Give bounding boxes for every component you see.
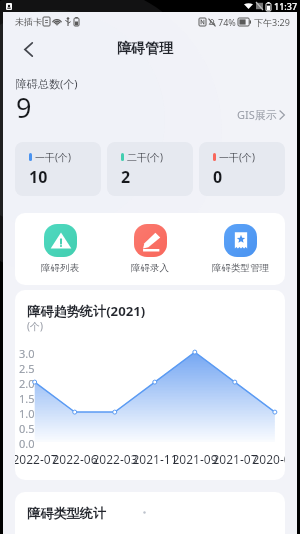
button[interactable]: GIS展示: [235, 105, 287, 124]
staticText: 0: [213, 166, 223, 188]
staticText: 障碍总数(个): [16, 76, 78, 91]
staticText: 障碍类型管理: [212, 262, 269, 274]
button[interactable]: 障碍列表: [15, 213, 105, 285]
button[interactable]: Back: [11, 31, 45, 65]
staticText: 一干(个): [35, 150, 71, 164]
button[interactable]: 一干(个): [15, 142, 101, 196]
staticText: 2021-07: [212, 451, 258, 467]
staticText: 9: [16, 89, 32, 126]
staticText: 一干(个): [219, 150, 255, 164]
button[interactable]: 障碍类型管理: [195, 213, 285, 285]
staticText: 障碍列表: [41, 262, 79, 274]
staticText: 0.0: [19, 436, 35, 451]
button[interactable]: 二干(个): [107, 142, 193, 196]
staticText: 2: [121, 166, 131, 188]
staticText: 障碍趋势统计(2021): [27, 302, 146, 320]
staticText: 2021-11: [132, 451, 178, 467]
staticText: 下午3:29: [254, 16, 290, 28]
staticText: 2.0: [19, 376, 35, 391]
staticText: 障碍录入: [131, 262, 169, 274]
button[interactable]: 障碍录入: [105, 213, 195, 285]
staticText: GIS展示: [237, 107, 277, 122]
staticText: 2022-03: [92, 451, 138, 467]
staticText: 1.5: [19, 391, 35, 406]
staticText: (个): [27, 319, 43, 333]
staticText: 74%: [218, 16, 236, 28]
staticText: 未插卡: [15, 16, 42, 27]
staticText: 11:37: [274, 0, 298, 12]
button[interactable]: 一干(个): [199, 142, 285, 196]
staticText: 3.0: [19, 346, 35, 361]
staticText: 2.5: [19, 361, 35, 376]
staticText: 1.0: [19, 406, 35, 421]
staticText: 障碍管理: [117, 40, 173, 58]
staticText: 2022-07: [15, 451, 58, 467]
staticText: 障碍类型统计: [27, 505, 107, 522]
staticText: 2020-06: [252, 451, 285, 467]
staticText: 二干(个): [127, 150, 163, 164]
staticText: 10: [29, 166, 48, 188]
staticText: 2022-06: [52, 451, 98, 467]
staticText: 2021-09: [172, 451, 218, 467]
staticText: 0.5: [19, 421, 35, 436]
